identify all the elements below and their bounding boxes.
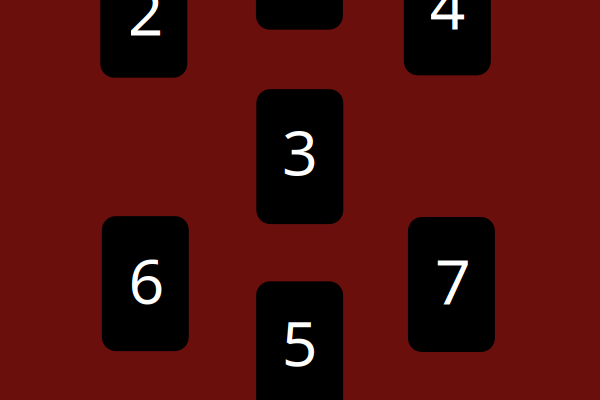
button[interactable]: 6: [102, 216, 189, 351]
staticText: 6: [128, 238, 164, 321]
button[interactable]: 4: [404, 0, 491, 75]
button[interactable]: 2: [100, 0, 187, 78]
staticText: 5: [282, 300, 318, 384]
button[interactable]: 7: [408, 217, 495, 352]
staticText: 4: [430, 0, 466, 47]
staticText: 3: [282, 110, 318, 193]
button[interactable]: 1: [256, 0, 343, 30]
staticText: 7: [435, 239, 471, 322]
button[interactable]: 5: [256, 281, 343, 400]
button[interactable]: 3: [256, 89, 343, 224]
staticText: 2: [127, 0, 163, 53]
